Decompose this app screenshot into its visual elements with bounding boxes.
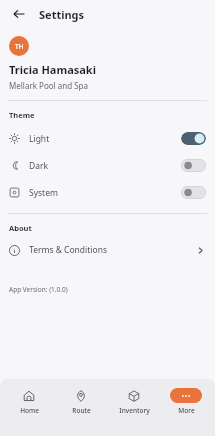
button[interactable]: Terms & Conditions — [0, 237, 215, 263]
button[interactable]: Off — [181, 159, 206, 172]
staticText: Home — [20, 406, 39, 415]
staticText: System — [29, 187, 58, 199]
staticText: Inventory — [119, 406, 150, 415]
button[interactable]: Off — [181, 186, 206, 199]
staticText: Terms & Conditions — [29, 244, 108, 256]
button[interactable]: System — [0, 179, 215, 206]
button[interactable]: Back — [8, 3, 30, 25]
staticText: TH — [15, 42, 24, 51]
staticText: Theme — [9, 110, 35, 120]
staticText: More — [178, 406, 195, 415]
staticText: About — [9, 223, 32, 233]
staticText: Light — [29, 133, 50, 145]
button[interactable]: Dark — [0, 152, 215, 179]
button[interactable]: Route — [58, 385, 104, 418]
button[interactable]: Light — [0, 125, 215, 152]
staticText: Dark — [29, 160, 49, 172]
staticText: App Version: (1.0.0) — [9, 285, 68, 294]
staticText: Settings — [39, 7, 85, 22]
button[interactable]: Inventory — [111, 385, 157, 418]
staticText: Tricia Hamasaki — [9, 62, 96, 77]
button[interactable]: Home — [6, 385, 52, 418]
button[interactable]: More — [163, 385, 209, 418]
button[interactable]: On — [181, 132, 206, 145]
staticText: Mellark Pool and Spa — [9, 80, 88, 91]
staticText: Route — [72, 406, 91, 415]
other: More — [180, 390, 192, 402]
